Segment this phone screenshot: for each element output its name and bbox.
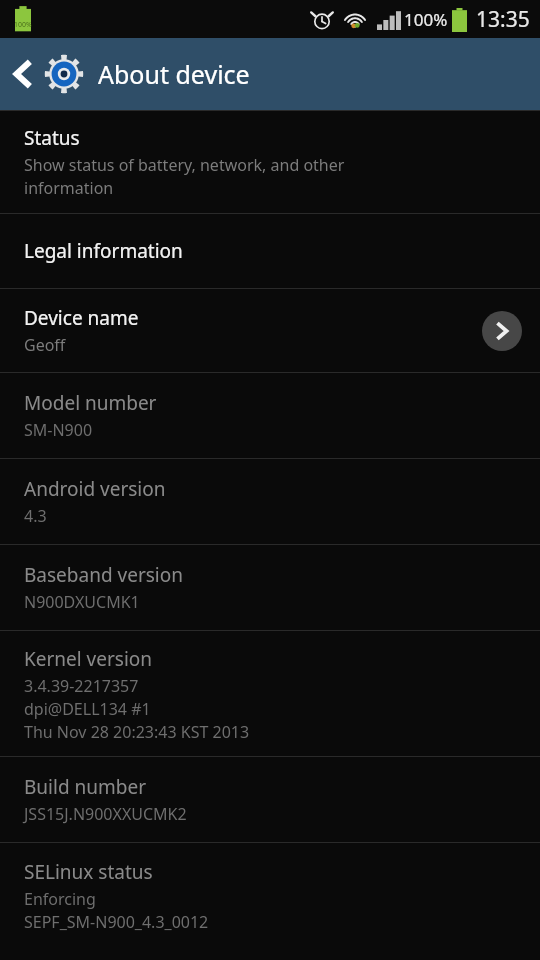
- staticText: Kernel version: [24, 646, 153, 672]
- staticText: Geoff: [24, 334, 66, 356]
- button[interactable]: Legal information: [0, 214, 540, 288]
- button[interactable]: Device name: [0, 289, 540, 372]
- staticText: Legal information: [24, 238, 183, 264]
- staticText: Show status of battery, network, and oth…: [24, 154, 345, 199]
- staticText: SELinux status: [24, 859, 153, 885]
- staticText: Android version: [24, 476, 166, 502]
- button[interactable]: Model number: [0, 373, 540, 458]
- staticText: 4.3: [24, 505, 47, 527]
- staticText: 3.4.39-2217357 dpi@DELL134 #1 Thu Nov 28…: [24, 675, 250, 743]
- staticText: Status: [24, 125, 80, 151]
- button[interactable]: Kernel version: [0, 631, 540, 756]
- staticText: N900DXUCMK1: [24, 591, 140, 613]
- staticText: 100%: [14, 20, 32, 30]
- staticText: Model number: [24, 390, 157, 416]
- staticText: Device name: [24, 305, 139, 331]
- staticText: Baseband version: [24, 562, 183, 588]
- button[interactable]: Baseband version: [0, 545, 540, 630]
- staticText: Enforcing SEPF_SM-N900_4.3_0012: [24, 888, 209, 933]
- staticText: About device: [98, 57, 250, 91]
- button[interactable]: Android version: [0, 459, 540, 544]
- button[interactable]: Build number: [0, 757, 540, 842]
- button[interactable]: Edit device name: [482, 311, 522, 351]
- staticText: JSS15J.N900XXUCMK2: [24, 803, 187, 825]
- staticText: SM-N900: [24, 419, 93, 441]
- button[interactable]: Back: [6, 46, 40, 102]
- button[interactable]: Status: [0, 111, 540, 213]
- staticText: 13:35: [476, 5, 530, 34]
- button[interactable]: SELinux status: [0, 843, 540, 949]
- staticText: 100%: [404, 8, 448, 31]
- staticText: Build number: [24, 774, 147, 800]
